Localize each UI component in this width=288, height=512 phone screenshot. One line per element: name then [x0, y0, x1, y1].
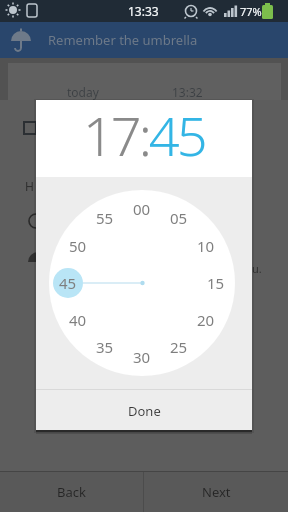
staticText: 17:45 — [83, 98, 205, 172]
staticText: 35 — [96, 337, 114, 357]
staticText: Back — [57, 483, 86, 501]
staticText: Remember the umbrella — [48, 31, 198, 49]
staticText: today — [67, 84, 99, 100]
staticText: 13:33 — [128, 3, 159, 19]
staticText: Done — [128, 402, 161, 420]
staticText: u. — [252, 261, 262, 274]
staticText: 77% — [240, 4, 262, 18]
staticText: 13:32 — [172, 84, 203, 100]
staticText: 55 — [96, 208, 114, 228]
staticText: 00 — [133, 199, 151, 219]
staticText: 40 — [69, 310, 87, 330]
staticText: 25 — [170, 337, 188, 357]
staticText: 45 — [59, 273, 77, 293]
button[interactable]: Back — [0, 472, 143, 512]
button[interactable]: Next — [145, 472, 288, 512]
staticText: 05 — [170, 208, 188, 228]
staticText: 20 — [197, 310, 215, 330]
staticText: 10 — [197, 236, 215, 256]
staticText: H — [25, 178, 34, 194]
staticText: 50 — [69, 236, 87, 256]
staticText: Next — [202, 483, 231, 501]
staticText: 30 — [133, 347, 151, 367]
button[interactable]: Done — [36, 392, 252, 430]
button[interactable]: Remember the umbrella — [0, 22, 288, 58]
staticText: 15 — [207, 273, 225, 293]
